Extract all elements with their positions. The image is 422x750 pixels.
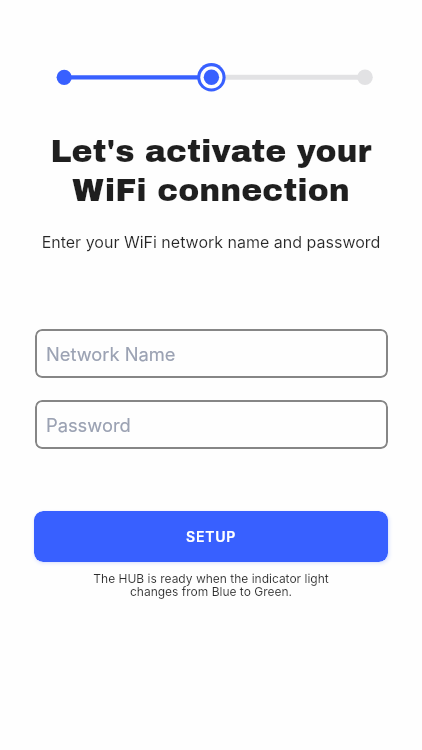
staticText: Password [46, 414, 131, 436]
other: Setup progress, step 2 of 3 [0, 60, 422, 94]
staticText: Network Name [46, 343, 176, 365]
staticText: The HUB is ready when the indicator ligh… [0, 571, 422, 599]
staticText: Enter your WiFi network name and passwor… [0, 232, 422, 251]
staticText: Let's activate your WiFi connection [0, 134, 422, 208]
staticText: SETUP [186, 528, 237, 545]
button[interactable]: Network Name [35, 329, 388, 378]
button[interactable]: Password [35, 400, 388, 449]
button[interactable]: SETUP [34, 511, 388, 562]
